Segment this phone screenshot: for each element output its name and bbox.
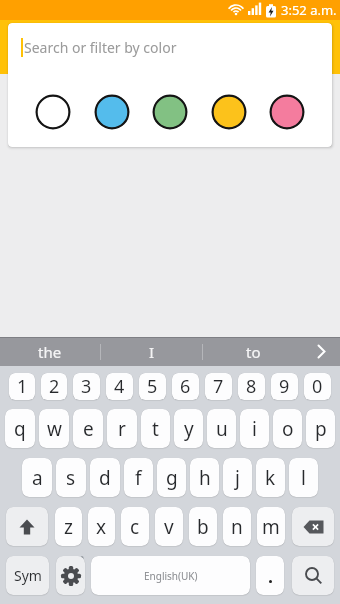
button[interactable]: o [273, 409, 302, 448]
button[interactable] [292, 507, 334, 546]
staticText: t [152, 416, 159, 442]
button[interactable]: the [0, 337, 100, 366]
staticText: v [164, 514, 174, 540]
staticText: m [262, 514, 280, 540]
button[interactable]: Search or filter by color [8, 23, 332, 147]
staticText: 7 [213, 374, 224, 399]
staticText: z [64, 514, 73, 540]
button[interactable] [211, 94, 247, 130]
button[interactable]: Sym [6, 556, 49, 595]
button[interactable]: 5 [139, 373, 166, 400]
button[interactable]: f [124, 458, 153, 497]
staticText: f [135, 465, 142, 491]
staticText: c [130, 514, 140, 540]
button[interactable]: e [73, 409, 103, 448]
button[interactable]: r [107, 409, 137, 448]
staticText: q [14, 416, 26, 442]
staticText: d [99, 465, 111, 491]
staticText: 0 [312, 374, 323, 399]
staticText: I [149, 342, 155, 362]
staticText: English(UK) [144, 569, 198, 583]
staticText: 6 [180, 374, 191, 399]
staticText: Sym [14, 566, 42, 585]
staticText: p [315, 416, 327, 442]
button[interactable] [269, 94, 305, 130]
button[interactable] [6, 507, 48, 546]
staticText: e [83, 416, 94, 442]
button[interactable]: I [101, 337, 202, 366]
staticText: k [265, 465, 276, 491]
staticText: b [197, 514, 209, 540]
button[interactable]: b [189, 507, 217, 546]
staticText: Search or filter by color [24, 38, 177, 57]
button[interactable] [304, 337, 340, 366]
button[interactable]: 7 [205, 373, 232, 400]
button[interactable] [256, 556, 284, 595]
button[interactable]: p [306, 409, 335, 448]
staticText: x [96, 514, 107, 540]
button[interactable]: h [190, 458, 219, 497]
button[interactable]: q [5, 409, 35, 448]
staticText: to [246, 342, 261, 362]
staticText: 2 [49, 374, 60, 399]
staticText: 4 [114, 374, 125, 399]
staticText: i [252, 416, 257, 442]
staticText: 9 [279, 374, 290, 399]
staticText: a [32, 465, 43, 491]
button[interactable]: m [257, 507, 285, 546]
button[interactable]: g [157, 458, 186, 497]
staticText: g [166, 465, 178, 491]
button[interactable]: w [39, 409, 69, 448]
staticText: j [235, 465, 240, 491]
button[interactable]: v [155, 507, 183, 546]
staticText: y [184, 416, 194, 442]
button[interactable]: 0 [304, 373, 331, 400]
button[interactable]: English(UK) [91, 556, 250, 595]
button[interactable]: l [289, 458, 318, 497]
staticText: o [282, 416, 294, 442]
staticText: the [38, 342, 62, 362]
button[interactable]: d [90, 458, 120, 497]
button[interactable] [56, 556, 85, 595]
button[interactable]: x [88, 507, 115, 546]
button[interactable]: t [141, 409, 170, 448]
staticText: 8 [246, 374, 257, 399]
button[interactable]: s [56, 458, 86, 497]
button[interactable]: u [207, 409, 236, 448]
staticText: l [301, 465, 306, 491]
button[interactable]: k [256, 458, 285, 497]
button[interactable]: a [22, 458, 52, 497]
staticText: r [118, 416, 126, 442]
button[interactable]: j [223, 458, 252, 497]
button[interactable] [152, 94, 188, 130]
staticText: 5 [147, 374, 158, 399]
staticText: u [216, 416, 228, 442]
button[interactable] [292, 556, 334, 595]
staticText: h [199, 465, 211, 491]
button[interactable]: 3 [73, 373, 100, 400]
button[interactable] [35, 94, 71, 130]
button[interactable]: 8 [238, 373, 265, 400]
staticText: 1 [17, 374, 28, 399]
button[interactable]: to [203, 337, 304, 366]
button[interactable]: 4 [106, 373, 133, 400]
staticText: s [66, 465, 76, 491]
button[interactable]: c [121, 507, 149, 546]
button[interactable]: 9 [271, 373, 298, 400]
button[interactable]: i [240, 409, 269, 448]
button[interactable]: n [223, 507, 251, 546]
staticText: n [231, 514, 243, 540]
button[interactable]: 6 [172, 373, 199, 400]
button[interactable]: z [55, 507, 82, 546]
staticText: 3 [81, 374, 92, 399]
button[interactable] [94, 94, 130, 130]
button[interactable]: 1 [9, 373, 35, 400]
staticText: w [47, 416, 62, 442]
staticText: 3:52 a.m. [281, 1, 337, 19]
button[interactable]: 2 [41, 373, 67, 400]
button[interactable]: y [174, 409, 203, 448]
